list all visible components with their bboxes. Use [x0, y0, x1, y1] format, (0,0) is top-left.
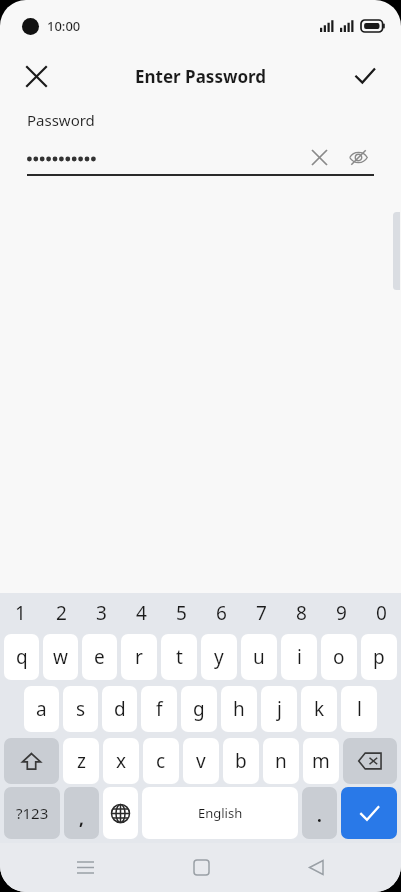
staticText: n	[275, 748, 287, 774]
button[interactable]: Backspace	[343, 738, 397, 784]
staticText: h	[233, 696, 245, 722]
button[interactable]: u	[241, 634, 277, 680]
staticText: e	[94, 644, 105, 670]
staticText: k	[314, 696, 325, 722]
staticText: Password	[27, 110, 95, 130]
staticText: w	[53, 644, 68, 670]
staticText: d	[114, 696, 126, 722]
staticText: j	[277, 696, 282, 722]
staticText: q	[16, 644, 28, 670]
button[interactable]: Back	[286, 843, 346, 892]
staticText: 1	[15, 600, 26, 626]
button[interactable]: Show password	[342, 144, 374, 170]
button[interactable]: t	[161, 634, 197, 680]
staticText: .	[317, 804, 322, 827]
button[interactable]: 8	[281, 595, 321, 631]
button[interactable]: m	[303, 738, 339, 784]
staticText: ?123	[16, 803, 49, 823]
button[interactable]: Clear	[304, 144, 334, 170]
staticText: t	[176, 644, 183, 670]
button[interactable]: ?123	[4, 787, 60, 839]
staticText: s	[76, 696, 86, 722]
button[interactable]: 9	[321, 595, 361, 631]
button[interactable]: Close	[12, 52, 60, 100]
staticText: 9	[336, 600, 347, 626]
button[interactable]: 2	[41, 595, 81, 631]
button[interactable]: .	[302, 787, 337, 839]
button[interactable]: q	[4, 634, 39, 680]
button[interactable]: 3	[81, 595, 121, 631]
button[interactable]: n	[263, 738, 299, 784]
button[interactable]: z	[63, 738, 99, 784]
staticText: 6	[216, 600, 227, 626]
staticText: l	[357, 696, 362, 722]
button[interactable]: 6	[201, 595, 241, 631]
button[interactable]: o	[321, 634, 357, 680]
staticText: ,	[79, 807, 84, 830]
button[interactable]: c	[143, 738, 179, 784]
staticText: u	[253, 644, 265, 670]
button[interactable]: a	[24, 686, 59, 732]
button[interactable]: s	[63, 686, 98, 732]
staticText: 2	[56, 600, 67, 626]
button[interactable]: d	[102, 686, 137, 732]
staticText: 3	[96, 600, 107, 626]
staticText: 8	[296, 600, 307, 626]
staticText: English	[198, 804, 243, 822]
staticText: a	[36, 696, 47, 722]
button[interactable]: w	[43, 634, 78, 680]
button[interactable]: ,	[64, 787, 99, 839]
button[interactable]: 0	[361, 595, 401, 631]
button[interactable]: Change language	[103, 787, 138, 839]
button[interactable]: i	[281, 634, 317, 680]
staticText: 0	[376, 600, 387, 626]
staticText: r	[135, 644, 143, 670]
staticText: v	[196, 748, 206, 774]
staticText: y	[214, 644, 224, 670]
button[interactable]: Shift	[4, 738, 59, 784]
button[interactable]: r	[121, 634, 157, 680]
button[interactable]: Home	[171, 843, 231, 892]
button[interactable]: 5	[161, 595, 201, 631]
button[interactable]: 1	[0, 595, 41, 631]
button[interactable]: x	[103, 738, 139, 784]
button[interactable]: Enter	[341, 787, 397, 839]
button[interactable]: e	[82, 634, 117, 680]
staticText: b	[235, 748, 247, 774]
staticText: f	[156, 696, 163, 722]
button[interactable]: h	[221, 686, 257, 732]
button[interactable]: v	[183, 738, 219, 784]
button[interactable]: f	[141, 686, 177, 732]
button[interactable]: p	[361, 634, 397, 680]
staticText: c	[156, 748, 166, 774]
staticText: Enter Password	[135, 65, 267, 88]
button[interactable]: Recent apps	[55, 843, 115, 892]
button[interactable]: Confirm	[341, 52, 389, 100]
button[interactable]: g	[181, 686, 217, 732]
staticText: o	[333, 644, 345, 670]
staticText: m	[312, 748, 330, 774]
button[interactable]: b	[223, 738, 259, 784]
button[interactable]: y	[201, 634, 237, 680]
staticText: 10:00	[47, 17, 81, 35]
staticText: x	[116, 748, 127, 774]
button[interactable]: English	[142, 787, 298, 839]
staticText: p	[373, 644, 385, 670]
button[interactable]: 7	[241, 595, 281, 631]
button[interactable]: j	[261, 686, 297, 732]
button[interactable]: k	[301, 686, 337, 732]
staticText: g	[193, 696, 205, 722]
staticText: i	[297, 644, 302, 670]
button[interactable]: l	[341, 686, 377, 732]
button[interactable]: 4	[121, 595, 161, 631]
staticText: 7	[256, 600, 267, 626]
staticText: 5	[176, 600, 187, 626]
staticText: z	[77, 748, 86, 774]
staticText: 4	[136, 600, 147, 626]
